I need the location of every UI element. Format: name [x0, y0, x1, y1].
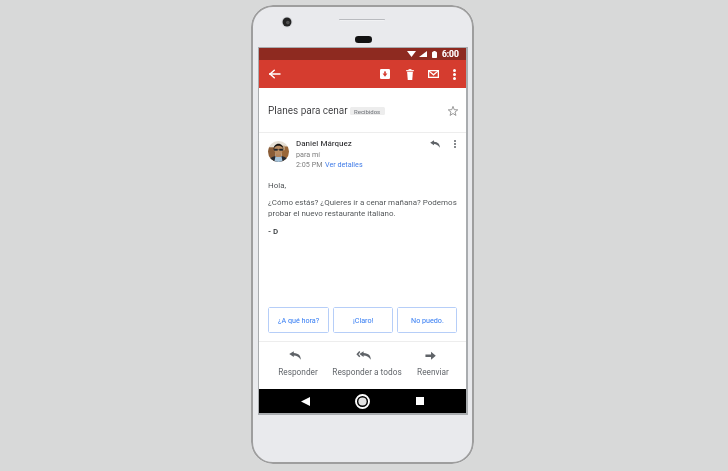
- button[interactable]: More options: [444, 64, 464, 84]
- staticText: Reenviar: [417, 367, 449, 377]
- button[interactable]: Home: [350, 389, 374, 413]
- button[interactable]: Mark as unread: [423, 64, 443, 84]
- staticText: 6:00: [442, 49, 459, 59]
- button[interactable]: Delete: [400, 64, 420, 84]
- button[interactable]: Star: [443, 101, 463, 121]
- staticText: Recibidos: [354, 108, 381, 115]
- button[interactable]: No puedo.: [397, 307, 457, 333]
- button[interactable]: Responder a todos: [317, 342, 417, 377]
- button[interactable]: More options: [445, 134, 465, 154]
- button[interactable]: Reenviar: [398, 342, 468, 377]
- button[interactable]: Ver detalles: [325, 160, 363, 168]
- staticText: Responder a todos: [332, 367, 402, 377]
- staticText: Planes para cenar: [268, 105, 348, 117]
- staticText: - D: [268, 227, 279, 236]
- staticText: para mí: [296, 150, 321, 158]
- staticText: ¿Cómo estás? ¿Quieres ir a cenar mañana?…: [268, 198, 475, 218]
- button[interactable]: Recent apps: [408, 389, 432, 413]
- button[interactable]: ¡Claro!: [333, 307, 393, 333]
- button[interactable]: Back: [293, 389, 317, 413]
- staticText: Daniel Márquez: [296, 139, 352, 148]
- button[interactable]: Reply: [425, 134, 445, 154]
- staticText: ¡Claro!: [353, 316, 374, 324]
- staticText: 2:05 PM: [296, 160, 325, 168]
- staticText: No puedo.: [411, 316, 444, 324]
- staticText: Ver detalles: [325, 160, 363, 168]
- staticText: Hola,: [268, 181, 287, 190]
- button[interactable]: ¿A qué hora?: [268, 307, 329, 333]
- button[interactable]: Responder: [263, 342, 333, 377]
- staticText: ¿A qué hora?: [278, 316, 320, 324]
- button[interactable]: Archive: [375, 64, 395, 84]
- staticText: Responder: [278, 367, 318, 377]
- button[interactable]: Back: [264, 64, 284, 84]
